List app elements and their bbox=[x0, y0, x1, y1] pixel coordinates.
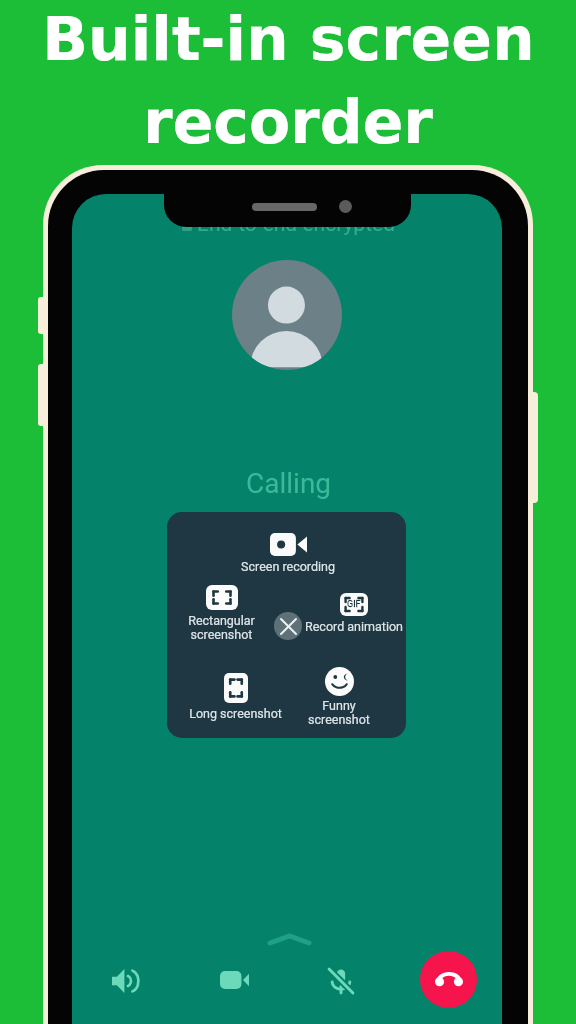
staticText: recorder bbox=[143, 87, 433, 157]
staticText: Screen recording bbox=[241, 559, 335, 574]
button[interactable]: Mute microphone bbox=[317, 957, 365, 1005]
staticText: Long screenshot bbox=[189, 706, 282, 721]
staticText: Record animation bbox=[305, 619, 403, 634]
staticText: Built-in screen bbox=[42, 4, 535, 74]
staticText: Calling bbox=[246, 467, 332, 500]
staticText: Funny screenshot bbox=[308, 698, 370, 727]
button[interactable]: Video bbox=[210, 956, 258, 1004]
staticText: Rectangular screenshot bbox=[188, 613, 255, 642]
staticText: GIF bbox=[347, 599, 361, 610]
staticText: End-to-end encrypted bbox=[197, 212, 396, 237]
button[interactable]: Long screenshot bbox=[175, 673, 295, 721]
button[interactable]: Close bbox=[274, 612, 302, 640]
button[interactable]: Rectangular screenshot bbox=[161, 585, 281, 642]
button[interactable]: Screen recording bbox=[228, 533, 348, 574]
button[interactable]: Speaker bbox=[101, 957, 149, 1005]
button[interactable]: End call bbox=[420, 951, 477, 1008]
button[interactable]: Funny screenshot bbox=[279, 667, 399, 727]
button[interactable]: GIF bbox=[294, 593, 414, 634]
